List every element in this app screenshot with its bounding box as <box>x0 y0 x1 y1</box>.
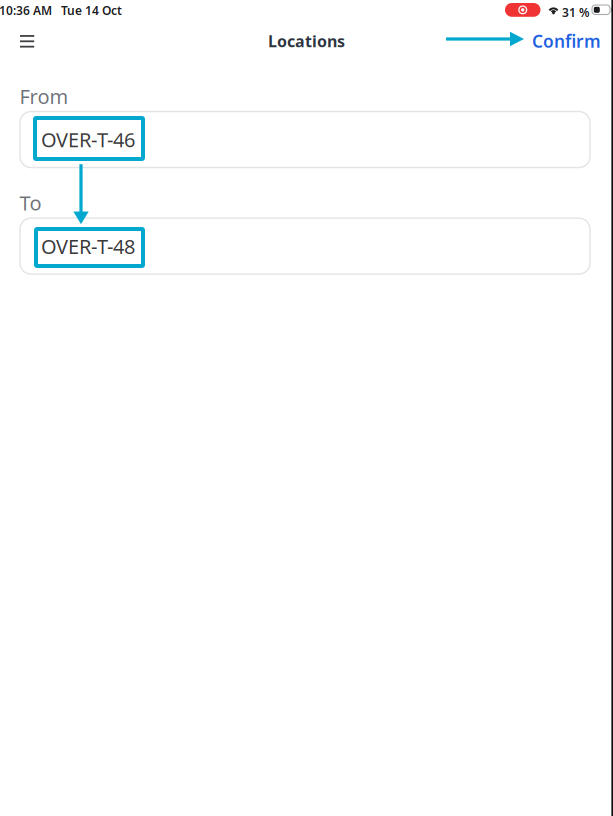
staticText: 10:36 AM <box>0 2 52 18</box>
staticText: 31 % <box>562 4 590 20</box>
staticText: From <box>19 83 68 110</box>
staticText: To <box>19 190 41 216</box>
button[interactable]: OVER-T-48 <box>20 218 590 274</box>
staticText: Locations <box>268 30 345 52</box>
button[interactable]: Confirm <box>527 23 606 58</box>
staticText: Confirm <box>532 29 601 52</box>
staticText: OVER-T-48 <box>41 233 135 259</box>
staticText: Tue 14 Oct <box>61 2 122 18</box>
button[interactable]: OVER-T-46 <box>20 112 590 168</box>
staticText: OVER-T-46 <box>41 126 135 153</box>
button[interactable]: Menu <box>10 26 44 56</box>
